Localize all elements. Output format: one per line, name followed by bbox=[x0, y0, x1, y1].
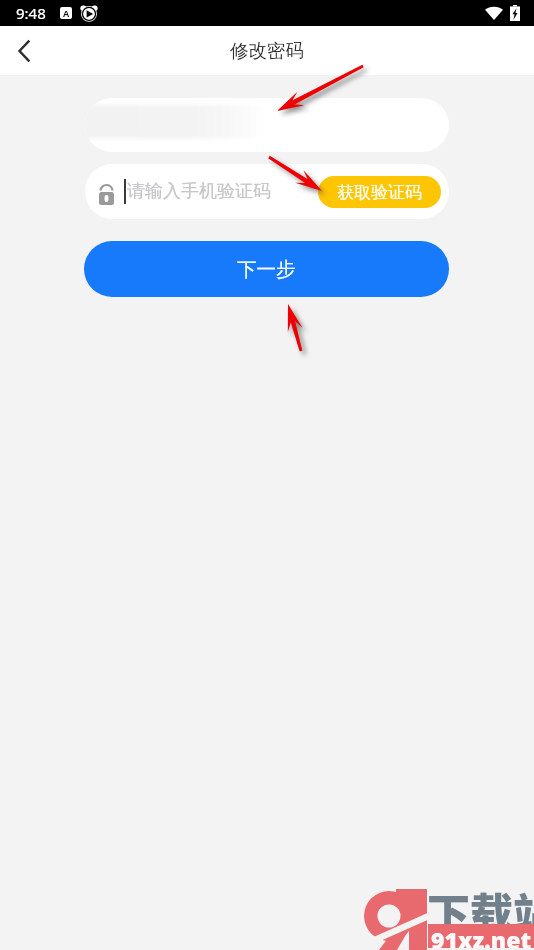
button[interactable]: 下一步 bbox=[84, 241, 449, 297]
staticText: 请输入手机验证码 bbox=[127, 180, 271, 203]
staticText: 下一步 bbox=[237, 257, 296, 282]
staticText: 下载站 bbox=[427, 880, 534, 942]
staticText: 9:48 bbox=[16, 3, 46, 23]
button[interactable]: 获取验证码 bbox=[318, 176, 441, 208]
button[interactable] bbox=[85, 98, 449, 152]
button[interactable]: Back bbox=[0, 27, 48, 75]
staticText: 91xz.net bbox=[431, 924, 531, 948]
staticText: 修改密码 bbox=[230, 39, 304, 62]
staticText: 获取验证码 bbox=[337, 182, 422, 203]
staticText: A bbox=[63, 7, 70, 19]
